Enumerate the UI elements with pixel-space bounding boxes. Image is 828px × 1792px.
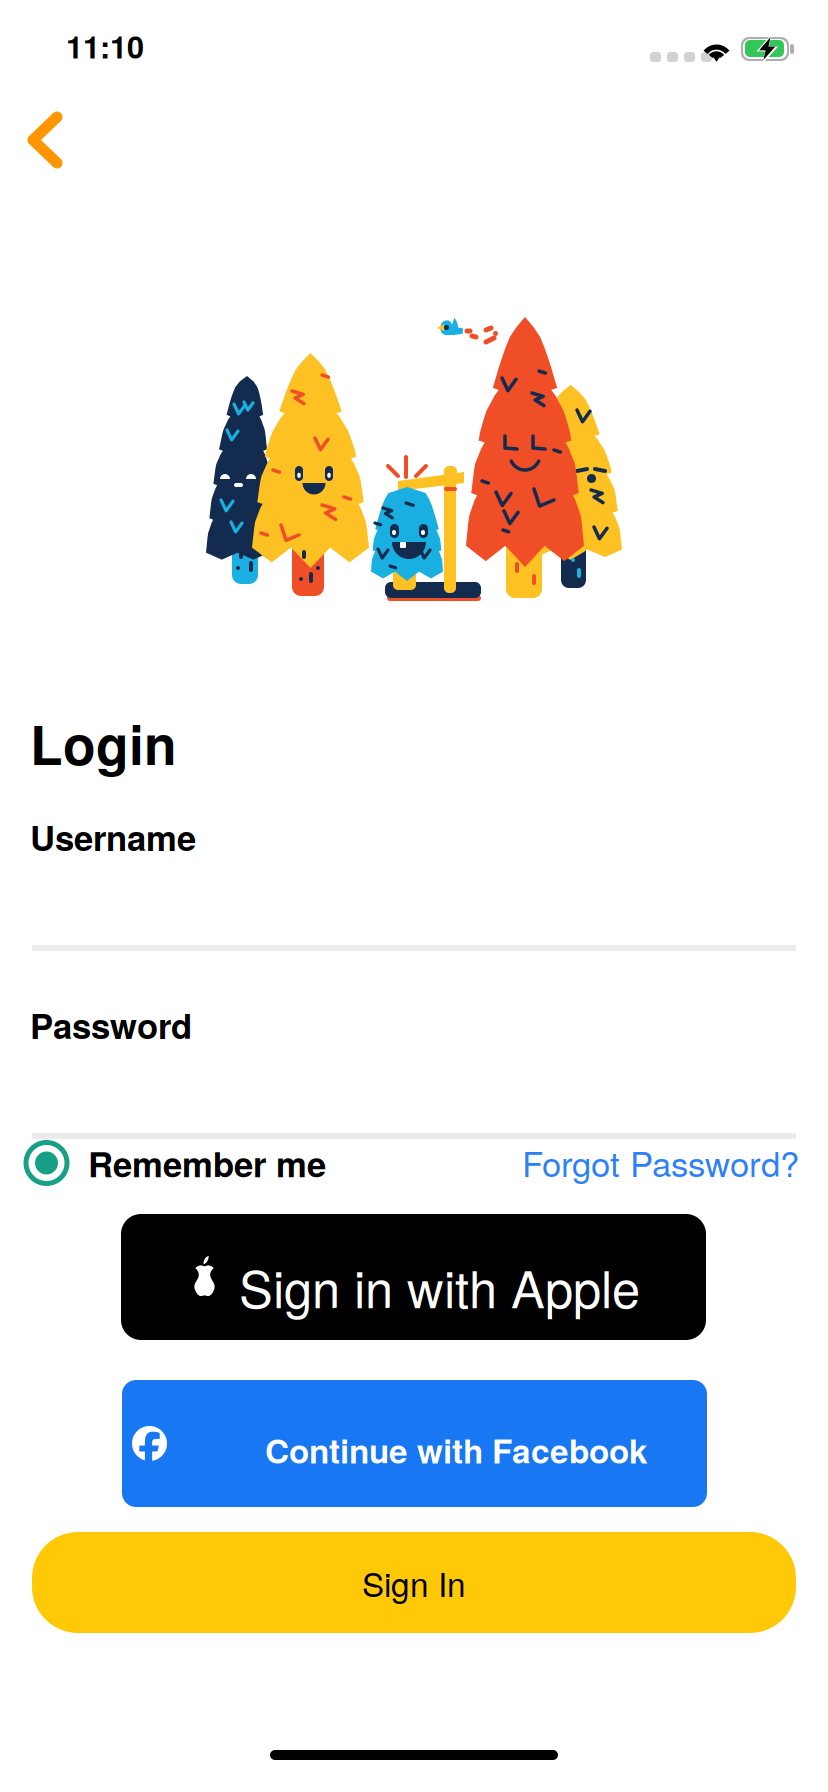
staticText: Sign in with Apple xyxy=(239,1250,640,1323)
button[interactable]: Remember me xyxy=(25,1137,326,1189)
staticText: Remember me xyxy=(88,1138,326,1188)
staticText: Sign In xyxy=(362,1559,466,1606)
staticText: Login xyxy=(30,705,177,781)
button[interactable]: Forgot Password? xyxy=(522,1136,799,1188)
staticText: Continue with Facebook xyxy=(265,1426,648,1474)
button[interactable]: Continue with Facebook xyxy=(122,1380,707,1507)
staticText: Password xyxy=(30,1000,192,1050)
button[interactable]: Back xyxy=(0,92,93,188)
button[interactable]: Sign in with Apple xyxy=(121,1214,706,1340)
staticText: 11:10 xyxy=(66,24,144,68)
button[interactable]: Sign In xyxy=(32,1532,796,1633)
staticText: Username xyxy=(30,812,196,862)
staticText: Forgot Password? xyxy=(522,1137,799,1187)
